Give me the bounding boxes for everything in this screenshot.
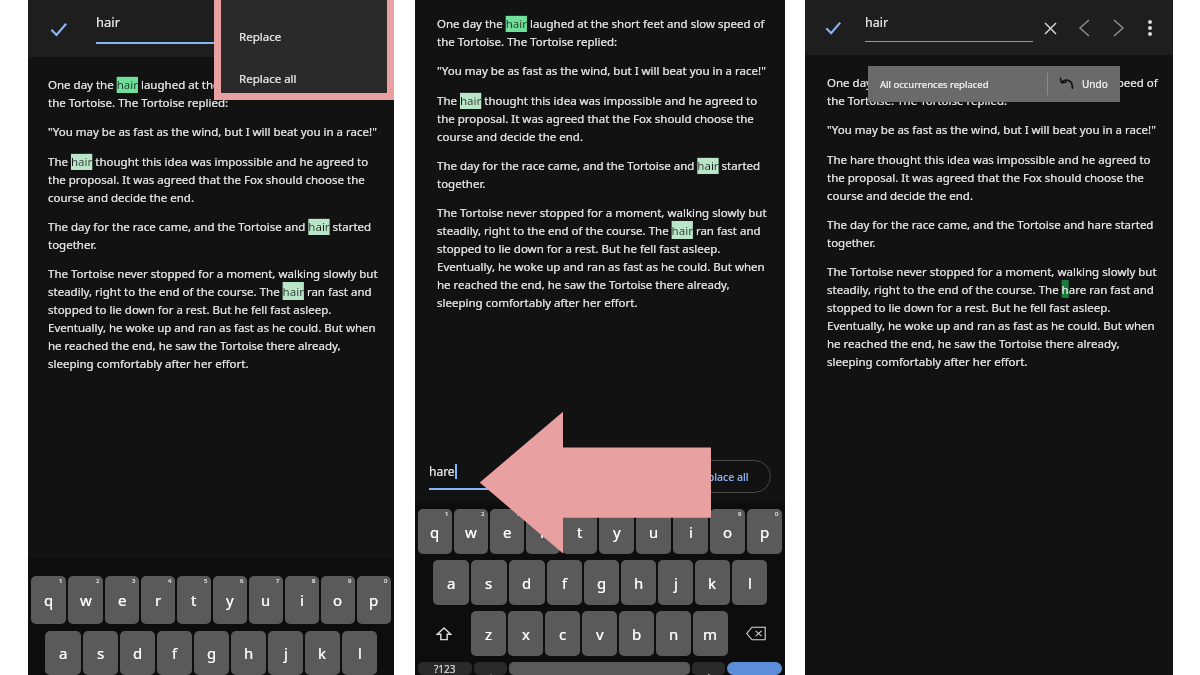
staticText: n <box>669 624 679 644</box>
staticText: The Tortoise never stopped for a moment,… <box>437 205 769 310</box>
staticText: q <box>430 522 440 542</box>
staticText: r <box>155 590 162 610</box>
staticText: h <box>634 573 644 593</box>
button[interactable]: y <box>213 576 247 624</box>
button[interactable]: z <box>471 611 506 656</box>
button[interactable]: f <box>547 560 582 605</box>
button[interactable]: Backspace <box>730 611 782 656</box>
button[interactable]: w <box>454 509 488 554</box>
staticText: h <box>244 643 254 663</box>
staticText: j <box>674 573 678 593</box>
button[interactable]: q <box>418 509 452 554</box>
button[interactable]: s <box>83 631 118 675</box>
button[interactable]: o <box>710 509 745 554</box>
button[interactable]: b <box>619 611 654 656</box>
staticText: f <box>172 643 178 663</box>
button[interactable]: r <box>141 576 175 624</box>
staticText: "You may be as fast as the wind, but I w… <box>827 122 1156 138</box>
button[interactable]: Next <box>1101 11 1135 45</box>
button[interactable]: h <box>231 631 266 675</box>
staticText: m <box>703 624 718 644</box>
staticText: The day for the race came, and the Torto… <box>48 219 380 252</box>
staticText: Undo <box>1082 77 1108 91</box>
button[interactable]: r <box>526 509 560 554</box>
button[interactable]: w <box>68 576 103 624</box>
button[interactable]: g <box>194 631 229 675</box>
button[interactable]: a <box>433 560 469 605</box>
button[interactable]: d <box>120 631 155 675</box>
button[interactable]: k <box>695 560 730 605</box>
button[interactable]: j <box>658 560 693 605</box>
staticText: 3 <box>132 577 136 585</box>
button[interactable]: x <box>508 611 543 656</box>
staticText: t <box>577 522 583 542</box>
button[interactable]: f <box>157 631 192 675</box>
button[interactable]: e <box>490 509 524 554</box>
staticText: One day the hare laughed at the short fe… <box>827 75 1159 108</box>
button[interactable]: Replace <box>221 0 387 93</box>
button[interactable]: v <box>582 611 617 656</box>
button[interactable]: Comma <box>474 662 507 675</box>
button[interactable]: Space <box>509 662 690 675</box>
button[interactable]: l <box>732 560 767 605</box>
button[interactable]: m <box>693 611 728 656</box>
button[interactable]: Period <box>692 662 725 675</box>
button[interactable]: Previous <box>1067 11 1101 45</box>
staticText: 8 <box>312 577 316 585</box>
staticText: x <box>522 624 530 644</box>
button[interactable]: Shift <box>418 611 469 656</box>
button[interactable]: u <box>636 509 671 554</box>
button[interactable]: g <box>584 560 619 605</box>
button[interactable]: q <box>31 576 66 624</box>
button[interactable]: i <box>285 576 319 624</box>
staticText: d <box>133 643 143 663</box>
staticText: 0 <box>775 510 779 518</box>
button[interactable]: Confirm <box>38 9 78 49</box>
staticText: 3 <box>517 510 521 518</box>
button[interactable]: s <box>471 560 507 605</box>
button[interactable]: h <box>621 560 656 605</box>
button[interactable]: p <box>357 576 391 624</box>
button[interactable]: p <box>747 509 782 554</box>
button[interactable]: o <box>321 576 355 624</box>
staticText: p <box>760 522 770 542</box>
staticText: 9 <box>738 510 742 518</box>
staticText: 9 <box>348 577 352 585</box>
staticText: 7 <box>664 510 668 518</box>
staticText: hair <box>865 14 889 31</box>
button[interactable]: Clear <box>1033 11 1067 45</box>
button[interactable]: l <box>342 631 377 675</box>
staticText: The Tortoise never stopped for a moment,… <box>48 266 380 371</box>
staticText: k <box>318 643 327 663</box>
button[interactable]: Replace all <box>239 65 387 93</box>
button[interactable]: Confirm <box>815 10 851 46</box>
button[interactable]: y <box>599 509 634 554</box>
staticText: u <box>649 522 659 542</box>
button[interactable]: Search <box>727 662 782 675</box>
button[interactable]: e <box>105 576 139 624</box>
button[interactable]: Replace <box>239 23 387 51</box>
button[interactable]: k <box>305 631 340 675</box>
button[interactable]: d <box>509 560 545 605</box>
button[interactable]: i <box>673 509 708 554</box>
button[interactable]: hare <box>429 463 663 490</box>
button[interactable]: t <box>177 576 211 624</box>
button[interactable]: a <box>45 631 81 675</box>
staticText: y <box>613 522 621 542</box>
button[interactable]: Undo <box>1060 77 1108 91</box>
staticText: All occurrences replaced <box>880 78 989 91</box>
staticText: 6 <box>627 510 631 518</box>
button[interactable]: j <box>268 631 303 675</box>
button[interactable]: u <box>249 576 283 624</box>
staticText: hair <box>96 13 121 31</box>
staticText: l <box>358 643 362 663</box>
button[interactable]: More options <box>1135 13 1165 43</box>
staticText: u <box>261 590 271 610</box>
staticText: e <box>503 522 512 542</box>
button[interactable]: ?123 <box>418 662 472 675</box>
button[interactable]: t <box>562 509 597 554</box>
staticText: The Tortoise never stopped for a moment,… <box>827 264 1159 369</box>
button[interactable]: c <box>545 611 580 656</box>
button[interactable]: Replace all <box>673 460 771 493</box>
button[interactable]: n <box>656 611 691 656</box>
